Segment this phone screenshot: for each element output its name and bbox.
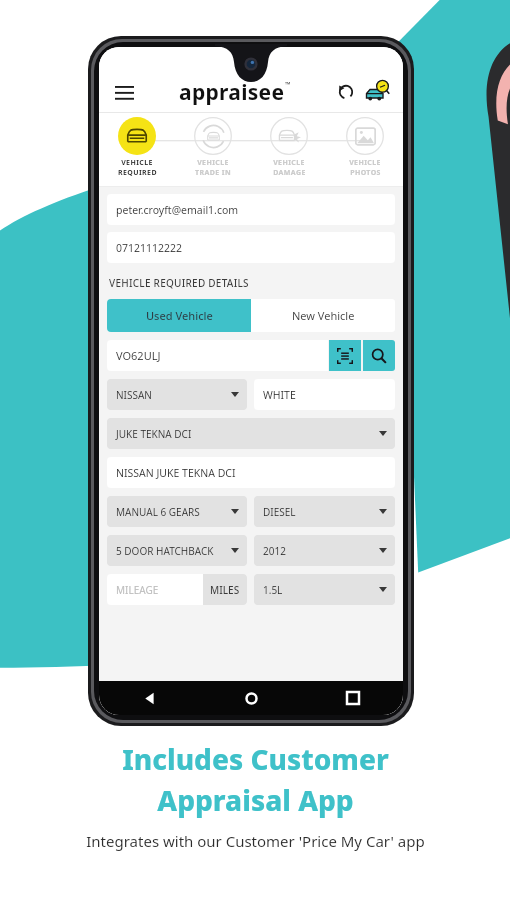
staticText: 5 DOOR HATCHBACK (116, 544, 231, 558)
button[interactable]: NISSAN JUKE TEKNA DCI (107, 457, 395, 488)
staticText: PHOTOS (350, 168, 381, 178)
staticText: WHITE (263, 388, 296, 402)
button[interactable]: MILEAGE (107, 574, 247, 605)
button[interactable]: New Vehicle (251, 299, 395, 332)
button[interactable]: Menu (110, 78, 138, 106)
button[interactable]: Home (201, 681, 302, 715)
staticText: 2012 (263, 544, 379, 558)
button[interactable]: Used Vehicle (107, 299, 251, 332)
button[interactable]: Scan plate (329, 340, 361, 371)
staticText: NISSAN (116, 388, 231, 402)
button[interactable]: WHITE (254, 379, 395, 410)
staticText: TRADE IN (195, 168, 231, 178)
staticText: 1.5L (263, 583, 379, 597)
staticText: 07121112222 (116, 241, 183, 255)
button[interactable]: 5 DOOR HATCHBACK (107, 535, 247, 566)
staticText: VEHICLE REQUIRED DETAILS (109, 276, 249, 290)
button[interactable]: Refresh (333, 79, 359, 105)
button[interactable]: Recents (302, 681, 403, 715)
button[interactable]: JUKE TEKNA DCI (107, 418, 395, 449)
staticText: New Vehicle (292, 308, 355, 323)
button[interactable]: DIESEL (254, 496, 395, 527)
button[interactable]: 07121112222 (107, 232, 395, 263)
button[interactable]: Back (99, 681, 201, 715)
button[interactable]: VEHICLE (99, 113, 175, 186)
staticText: Integrates with our Customer 'Price My C… (86, 831, 425, 851)
button[interactable]: VEHICLE (175, 113, 251, 186)
staticText: MILES (210, 583, 240, 597)
button[interactable]: Search vehicle (362, 77, 392, 107)
staticText: REQUIRED (118, 168, 157, 178)
staticText: VEHICLE (197, 158, 229, 168)
staticText: VEHICLE (273, 158, 305, 168)
staticText: DIESEL (263, 505, 379, 519)
button[interactable]: 1.5L (254, 574, 395, 605)
staticText: DAMAGE (273, 168, 306, 178)
staticText: MILEAGE (116, 583, 203, 597)
button[interactable]: Search (363, 340, 395, 371)
staticText: peter.croyft@email1.com (116, 203, 239, 217)
button[interactable]: VO62ULJ (107, 340, 328, 371)
button[interactable]: NISSAN (107, 379, 247, 410)
button[interactable]: peter.croyft@email1.com (107, 194, 395, 225)
staticText: VO62ULJ (116, 348, 161, 363)
staticText: VEHICLE (349, 158, 381, 168)
staticText: ™ (285, 80, 291, 90)
staticText: JUKE TEKNA DCI (116, 427, 379, 441)
button[interactable]: VEHICLE (327, 113, 403, 186)
staticText: Used Vehicle (146, 308, 213, 323)
staticText: MANUAL 6 GEARS (116, 505, 231, 519)
staticText: NISSAN JUKE TEKNA DCI (116, 466, 236, 480)
staticText: Includes Customer (122, 740, 389, 778)
staticText: VEHICLE (121, 158, 153, 168)
button[interactable]: VEHICLE (251, 113, 327, 186)
button[interactable]: MANUAL 6 GEARS (107, 496, 247, 527)
staticText: Appraisal App (157, 781, 354, 819)
button[interactable]: 2012 (254, 535, 395, 566)
staticText: appraisee (179, 78, 285, 107)
